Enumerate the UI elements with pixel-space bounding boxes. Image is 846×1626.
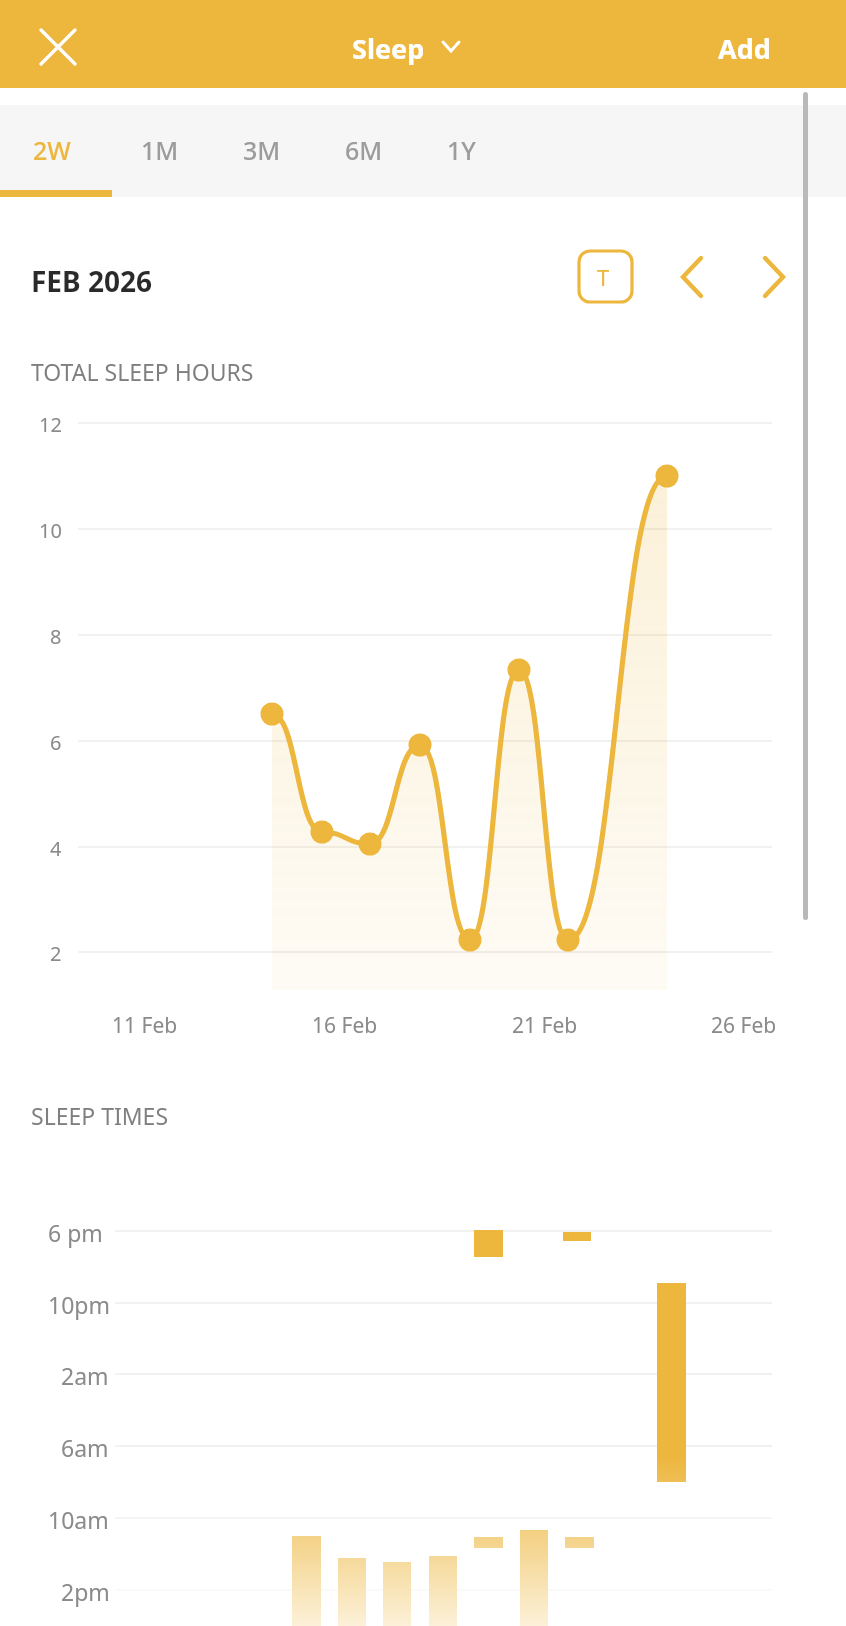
- staticText: 6: [50, 729, 62, 756]
- button[interactable]: Next period: [744, 248, 806, 306]
- staticText: 11 Feb: [112, 1011, 178, 1040]
- staticText: T: [597, 262, 610, 292]
- staticText: Sleep: [352, 30, 425, 67]
- button[interactable]: [121, 110, 211, 192]
- staticText: 1M: [141, 133, 179, 167]
- staticText: 10pm: [48, 1289, 110, 1320]
- staticText: 12: [39, 411, 62, 438]
- button[interactable]: [700, 14, 820, 74]
- button[interactable]: [325, 110, 415, 192]
- staticText: 4: [50, 835, 62, 862]
- staticText: 16 Feb: [312, 1011, 378, 1040]
- staticText: 10: [39, 517, 62, 544]
- button[interactable]: [330, 14, 480, 74]
- button[interactable]: [13, 110, 103, 192]
- staticText: 3M: [243, 133, 281, 167]
- staticText: 6 pm: [48, 1217, 103, 1248]
- staticText: 8: [50, 623, 62, 650]
- button[interactable]: [223, 110, 313, 192]
- staticText: 21 Feb: [512, 1011, 578, 1040]
- staticText: 2am: [61, 1360, 109, 1391]
- staticText: SLEEP TIMES: [31, 1100, 169, 1131]
- staticText: 6am: [61, 1432, 109, 1463]
- button[interactable]: [427, 110, 517, 192]
- staticText: 6M: [345, 133, 383, 167]
- staticText: FEB 2026: [31, 262, 153, 300]
- staticText: 2pm: [61, 1576, 110, 1607]
- staticText: 26 Feb: [711, 1011, 777, 1040]
- button[interactable]: Previous period: [662, 248, 724, 306]
- staticText: 2W: [33, 133, 71, 167]
- button[interactable]: Close: [24, 14, 92, 82]
- staticText: TOTAL SLEEP HOURS: [31, 356, 254, 387]
- staticText: Add: [718, 30, 771, 67]
- staticText: 10am: [48, 1504, 109, 1535]
- staticText: 2: [50, 940, 62, 967]
- staticText: 1Y: [447, 133, 476, 167]
- button[interactable]: Today: [575, 248, 637, 306]
